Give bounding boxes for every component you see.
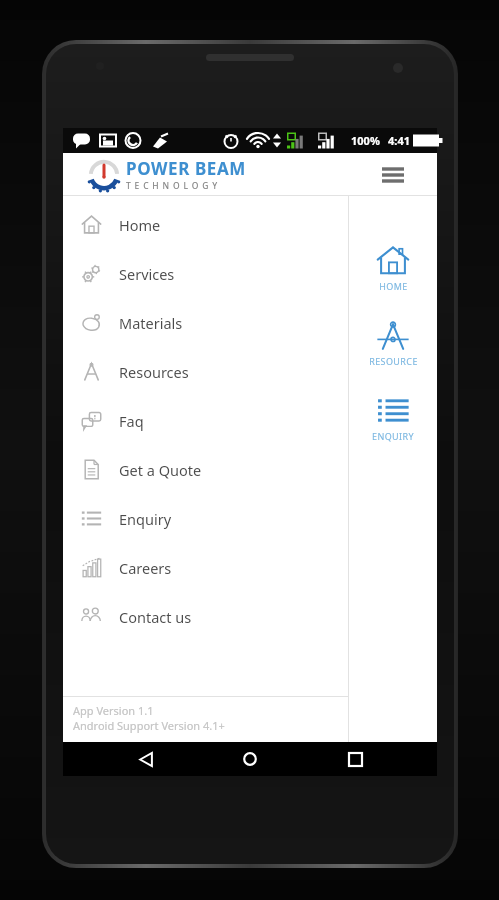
- staticText: HOME: [379, 280, 408, 292]
- button[interactable]: Back: [124, 742, 168, 776]
- button[interactable]: Resources: [63, 347, 348, 396]
- button[interactable]: Careers: [63, 543, 348, 592]
- button[interactable]: Open menu: [349, 153, 437, 196]
- staticText: Faq: [119, 411, 144, 431]
- staticText: Careers: [119, 558, 172, 578]
- button[interactable]: HOME: [349, 244, 437, 292]
- button[interactable]: ENQUIRY: [349, 394, 437, 442]
- button[interactable]: Faq: [63, 396, 348, 445]
- staticText: RESOURCE: [369, 355, 418, 367]
- staticText: Contact us: [119, 607, 192, 627]
- button[interactable]: Contact us: [63, 592, 348, 641]
- staticText: Home: [119, 215, 161, 235]
- staticText: POWER BEAM: [126, 157, 246, 180]
- button[interactable]: Home: [228, 742, 272, 776]
- staticText: Android Support Version 4.1+: [73, 718, 225, 733]
- button[interactable]: RESOURCE: [349, 319, 437, 367]
- button[interactable]: Recent apps: [333, 742, 377, 776]
- staticText: T E C H N O L O G Y: [126, 180, 218, 192]
- staticText: Get a Quote: [119, 460, 202, 480]
- button[interactable]: Enquiry: [63, 494, 348, 543]
- button[interactable]: Materials: [63, 298, 348, 347]
- staticText: 4:41 PM: [388, 133, 431, 148]
- staticText: Materials: [119, 313, 183, 333]
- staticText: Resources: [119, 362, 189, 382]
- button[interactable]: Services: [63, 249, 348, 298]
- button[interactable]: Home: [63, 200, 348, 249]
- staticText: Enquiry: [119, 509, 172, 529]
- staticText: 100%: [351, 133, 380, 148]
- button[interactable]: Get a Quote: [63, 445, 348, 494]
- staticText: Services: [119, 264, 175, 284]
- staticText: App Version 1.1: [73, 703, 154, 718]
- staticText: ENQUIRY: [372, 430, 414, 442]
